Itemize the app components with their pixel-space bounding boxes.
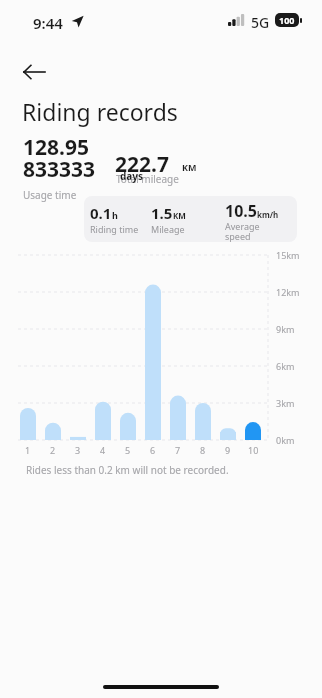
staticText: 0.1: [90, 203, 112, 223]
staticText: 3km: [276, 397, 295, 409]
staticText: h: [112, 209, 118, 221]
staticText: 5G: [251, 13, 270, 32]
staticText: Riding records: [22, 96, 178, 127]
staticText: 8: [200, 444, 206, 456]
staticText: 0km: [276, 434, 295, 446]
staticText: speed: [225, 230, 251, 242]
staticText: 2: [50, 444, 56, 456]
staticText: Mileage: [151, 223, 185, 235]
staticText: 15km: [276, 249, 300, 261]
staticText: 1: [25, 444, 31, 456]
button[interactable]: Back: [12, 55, 56, 89]
staticText: Average: [225, 220, 260, 232]
staticText: 9km: [276, 323, 295, 335]
staticText: Usage time: [23, 188, 77, 202]
staticText: 100: [279, 14, 295, 26]
staticText: Total mileage: [116, 172, 179, 186]
staticText: 222.7: [115, 150, 169, 179]
staticText: 12km: [276, 286, 300, 298]
staticText: 833333: [23, 155, 96, 184]
staticText: KM: [173, 210, 186, 221]
staticText: days: [120, 169, 144, 183]
staticText: 9:44: [33, 13, 63, 33]
staticText: 6km: [276, 360, 295, 372]
staticText: KM: [182, 161, 197, 173]
staticText: 128.95: [23, 133, 89, 162]
staticText: 1.5: [151, 203, 173, 223]
staticText: 3: [75, 444, 81, 456]
staticText: 5: [125, 444, 131, 456]
staticText: 7: [175, 444, 181, 456]
staticText: 4: [100, 444, 106, 456]
staticText: Riding time: [90, 223, 139, 235]
staticText: Rides less than 0.2 km will not be recor…: [26, 463, 229, 477]
staticText: 10.5: [225, 200, 257, 222]
staticText: km/h: [257, 209, 279, 220]
button[interactable]: 0.1: [84, 196, 297, 242]
staticText: 10: [248, 444, 259, 456]
staticText: 9: [225, 444, 231, 456]
staticText: 6: [150, 444, 156, 456]
